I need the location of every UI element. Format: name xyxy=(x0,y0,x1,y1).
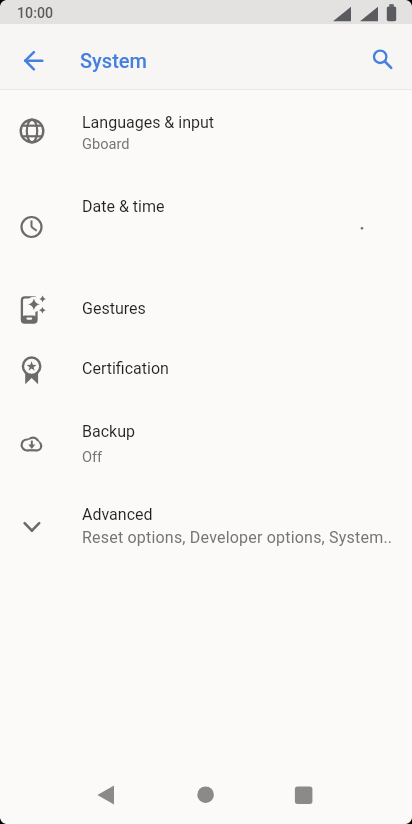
staticText: Gestures xyxy=(82,299,146,318)
staticText: Reset options, Developer options, System… xyxy=(82,528,393,547)
staticText: Date & time xyxy=(82,197,165,216)
staticText: Gboard xyxy=(82,135,130,152)
staticText: Certification xyxy=(82,359,169,378)
staticText: Advanced xyxy=(82,505,153,524)
staticText: System xyxy=(80,49,147,72)
staticText: Backup xyxy=(82,422,135,441)
staticText: 10:00 xyxy=(17,5,54,22)
staticText: Off xyxy=(82,448,103,465)
staticText: Languages & input xyxy=(82,113,215,132)
